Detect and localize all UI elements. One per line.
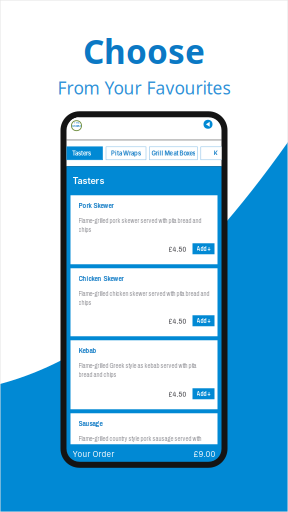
button[interactable]: Chicken Skewer xyxy=(70,268,217,336)
staticText: THE xyxy=(74,121,79,124)
button[interactable]: Back xyxy=(201,118,214,131)
staticText: Flame-grilled pork skewer served with pi… xyxy=(78,216,201,234)
staticText: K xyxy=(214,150,218,157)
staticText: Chicken Skewer xyxy=(78,273,123,283)
button[interactable]: Tasters xyxy=(61,147,103,160)
staticText: Flame-grilled Greek style as kebab serve… xyxy=(78,361,196,379)
staticText: Flame-grilled chicken skewer served with… xyxy=(78,289,209,307)
staticText: £4.50 xyxy=(168,243,186,254)
staticText: GREEKS xyxy=(72,124,81,128)
staticText: £4.50 xyxy=(168,315,186,326)
button[interactable]: K xyxy=(201,147,231,160)
staticText: Grill Meat Boxes xyxy=(151,150,195,157)
button[interactable]: Grill Meat Boxes xyxy=(149,147,197,160)
button[interactable]: Pork Skewer xyxy=(70,195,217,264)
staticText: Flame-grilled country style pork sausage… xyxy=(78,434,201,443)
staticText: Pita Wraps xyxy=(111,150,141,157)
button[interactable]: Kebab xyxy=(70,340,217,409)
staticText: Add + xyxy=(196,244,210,253)
staticText: Add + xyxy=(196,316,210,325)
staticText: Sausage xyxy=(78,418,102,428)
staticText: Pork Skewer xyxy=(78,200,113,210)
staticText: Choose xyxy=(83,29,205,73)
staticText: Tasters xyxy=(72,175,104,186)
staticText: £9.00 xyxy=(193,450,215,459)
staticText: Tasters xyxy=(72,150,91,157)
staticText: Your Order xyxy=(72,450,114,459)
button[interactable]: Your Order xyxy=(66,447,221,462)
staticText: £4.50 xyxy=(168,388,186,399)
button[interactable]: Pita Wraps xyxy=(106,147,146,160)
staticText: Kebab xyxy=(78,345,96,355)
button[interactable]: Sausage xyxy=(70,413,217,444)
staticText: Add + xyxy=(196,389,210,398)
staticText: From Your Favourites xyxy=(57,76,230,99)
